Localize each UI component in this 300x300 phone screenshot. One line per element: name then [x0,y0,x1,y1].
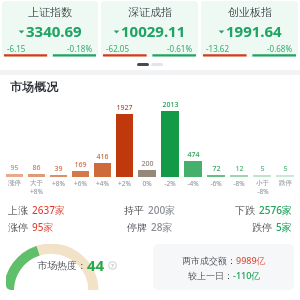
staticText: 深证成指 [128,5,172,19]
staticText: 44 [87,255,105,275]
staticText: 创业板指 [228,5,272,19]
staticText: -110亿 [233,269,261,281]
button[interactable]: 市场热度： [6,244,147,290]
staticText: 95 [10,163,19,173]
staticText: 上涨 [8,204,28,217]
staticText: -4% [187,179,199,188]
staticText: 416 [96,152,109,162]
staticText: 小于 [256,179,269,187]
staticText: +8% [30,187,43,196]
staticText: 5 [283,164,288,174]
button[interactable]: 两市成交额： [153,244,294,290]
staticText: 上证指数 [28,5,72,19]
staticText: 跌停 [279,179,292,187]
staticText: 5家 [276,220,292,234]
staticText: -8% [233,179,245,188]
staticText: 下跌 [235,204,255,217]
button[interactable]: 涨停 [8,220,102,234]
staticText: -13.62 [206,43,230,54]
button[interactable]: 跌停 [197,220,292,234]
button[interactable]: Help about market heat [108,261,117,270]
staticText: +6% [74,179,87,188]
staticText: 169 [74,160,87,170]
staticText: -2% [164,179,176,188]
staticText: 95家 [32,220,54,234]
button[interactable]: 上证指数 [2,1,98,57]
staticText: 持平 [124,204,144,217]
staticText: 200家 [148,203,176,217]
staticText: +4% [96,179,109,188]
staticText: 2013 [162,100,179,110]
staticText: 市场概况 [10,79,58,94]
button[interactable]: 下跌 [197,203,292,217]
staticText: -8% [257,187,269,196]
button[interactable]: 停牌 [102,220,197,234]
staticText: 86 [32,163,41,173]
staticText: 2576家 [259,203,292,217]
staticText: -6.15 [7,43,26,54]
staticText: 跌停 [252,221,272,234]
staticText: ? [111,262,114,270]
staticText: 5 [260,164,265,174]
button[interactable]: 创业板指 [201,1,298,57]
staticText: 涨停 [8,221,28,234]
staticText: 市场热度： [37,259,87,272]
button[interactable]: 持平 [102,203,197,217]
button[interactable]: 深证成指 [101,1,198,57]
staticText: 10029.11 [121,21,186,41]
staticText: 较上一日： [188,270,233,281]
staticText: +8% [52,179,65,188]
staticText: 200 [141,159,154,169]
staticText: +2% [118,179,131,188]
staticText: 72 [212,164,221,174]
staticText: -0.18% [67,43,93,54]
staticText: 2637家 [32,203,65,217]
staticText: 1991.64 [226,21,282,41]
staticText: 39 [54,164,63,174]
staticText: 大于 [30,179,43,187]
staticText: 9989亿 [236,254,266,266]
staticText: -62.05 [106,43,130,54]
button[interactable]: 上涨 [8,203,102,217]
staticText: 3340.69 [26,21,82,41]
staticText: 1927 [116,103,133,113]
staticText: 12 [235,164,244,174]
staticText: 28家 [151,220,173,234]
staticText: 474 [187,150,200,160]
staticText: -0.61% [167,43,193,54]
staticText: 涨停 [8,179,21,187]
staticText: 停牌 [127,221,147,234]
staticText: -0.68% [267,43,293,54]
staticText: -6% [210,179,222,188]
staticText: 0% [142,179,152,188]
staticText: 两市成交额： [182,255,236,266]
